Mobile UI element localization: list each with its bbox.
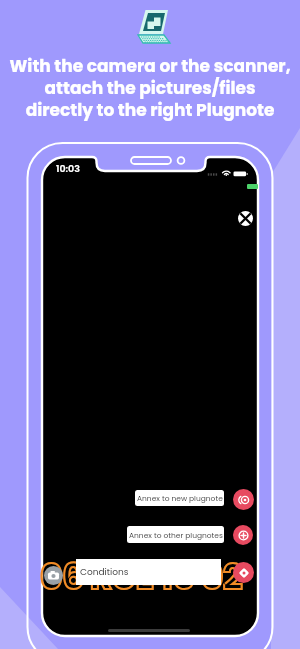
staticText: Annex to new plugnote (137, 493, 223, 503)
button[interactable]: Conditions (76, 559, 221, 585)
button[interactable]: Annex to new plugnote (135, 490, 224, 506)
button[interactable]: Annex to other plugnotes (127, 526, 224, 543)
button[interactable]: Close (238, 211, 253, 226)
staticText: Conditions (80, 566, 129, 579)
staticText: With the camera or the scanner, attach t… (0, 54, 300, 122)
staticText: 06 RUE 15 02 14 (40, 552, 256, 601)
staticText: Annex to other plugnotes (129, 530, 223, 540)
button[interactable]: Scan new plugnote (233, 489, 254, 510)
staticText: 10:03 (56, 162, 80, 175)
button[interactable]: Camera (44, 566, 63, 585)
button[interactable]: Annex to other plugnotes (233, 525, 253, 545)
button[interactable]: Capture (233, 562, 254, 583)
